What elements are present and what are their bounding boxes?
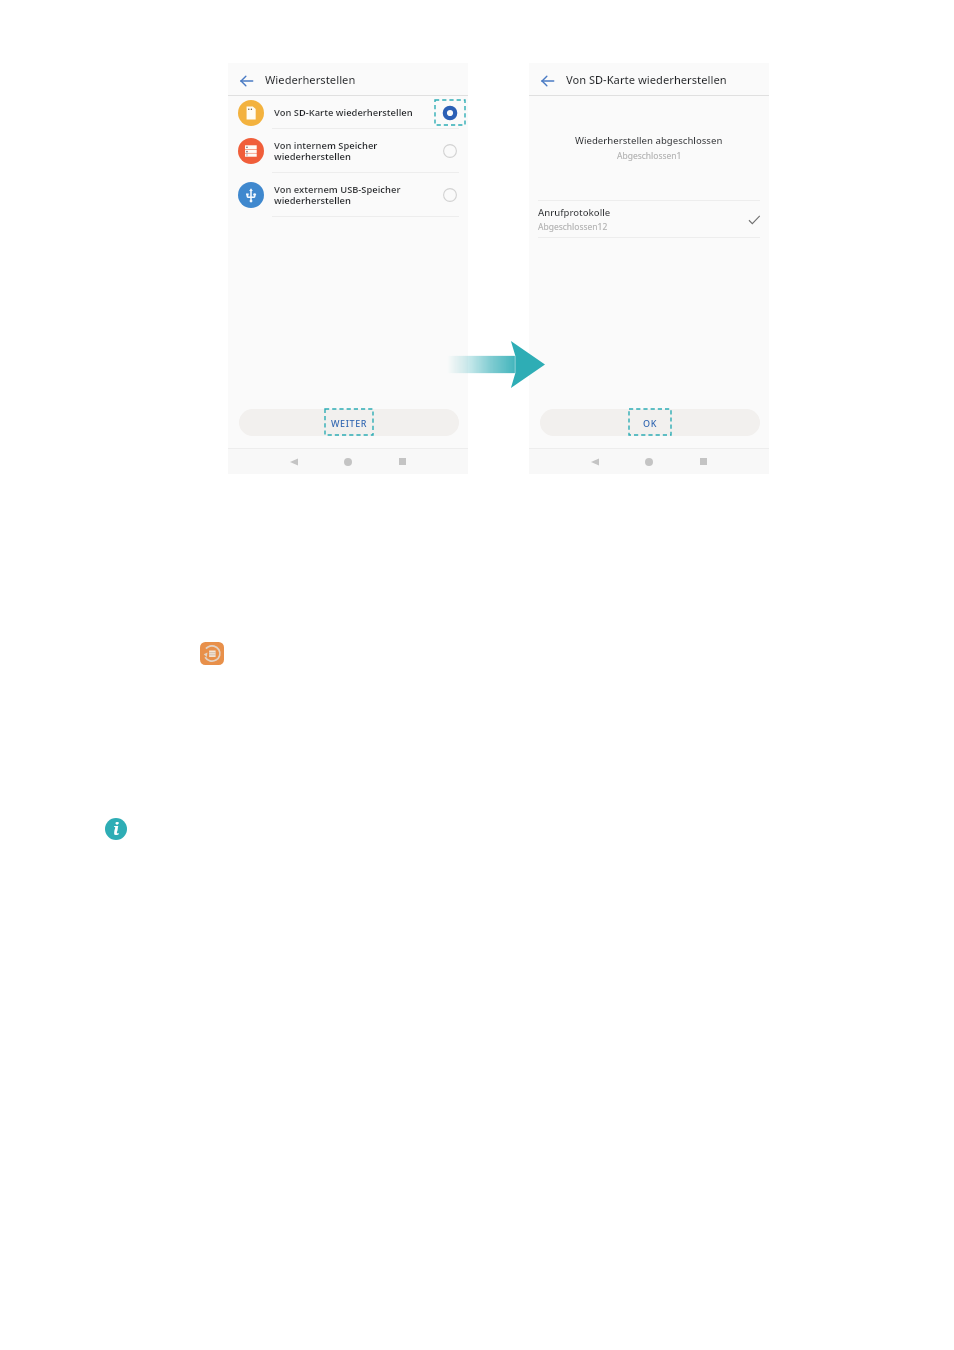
button[interactable]: Von externem USB-Speicher wiederherstell… [228,173,468,217]
button[interactable]: OK [540,409,760,436]
staticText: i [113,818,119,840]
button[interactable]: Back [529,63,561,96]
button[interactable]: Back [267,449,321,474]
button[interactable]: Home [321,449,375,474]
staticText: Anrufprotokolle [538,206,611,219]
button[interactable]: Anrufprotokolle [538,201,760,238]
button[interactable]: Home [622,449,676,474]
button[interactable]: Von internem Speicher wiederherstellen [228,129,468,173]
staticText: Wiederherstellen [265,72,356,87]
staticText: Von SD-Karte wiederherstellen [566,72,727,87]
staticText: Wiederherstellen abgeschlossen [575,134,723,147]
staticText: Von internem Speicher wiederherstellen [274,139,432,163]
button[interactable]: Back [568,449,622,474]
button[interactable]: Von SD-Karte wiederherstellen [228,96,468,129]
staticText: WEITER [331,417,368,429]
staticText: Von externem USB-Speicher wiederherstell… [274,183,432,207]
button[interactable]: Recents [375,449,429,474]
staticText: Abgeschlossen12 [538,221,608,233]
staticText: Abgeschlossen1 [617,150,682,162]
button[interactable]: Back [228,63,260,96]
button[interactable]: Recents [676,449,730,474]
staticText: OK [643,417,657,429]
staticText: Von SD-Karte wiederherstellen [274,106,432,119]
button[interactable]: WEITER [239,409,459,436]
